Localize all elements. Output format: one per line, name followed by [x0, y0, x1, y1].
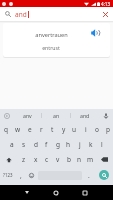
staticText: 4:13 — [101, 1, 111, 7]
staticText: entrust — [42, 44, 60, 51]
staticText: i — [85, 125, 87, 134]
button[interactable]: ?123 — [0, 167, 15, 183]
staticText: and — [80, 112, 90, 119]
button[interactable]: e — [24, 122, 36, 137]
button[interactable]: s — [18, 137, 30, 152]
button[interactable]: d — [30, 137, 41, 152]
button[interactable]: i — [80, 122, 91, 137]
button[interactable]: m — [85, 152, 96, 167]
button[interactable]: o — [91, 122, 102, 137]
button[interactable]: Back — [18, 185, 36, 200]
staticText: j — [79, 140, 81, 149]
button[interactable]: Recent apps — [76, 185, 94, 200]
button[interactable]: f — [41, 137, 52, 152]
button[interactable]: Shift — [0, 152, 18, 167]
button[interactable]: b — [63, 152, 74, 167]
button[interactable]: anvertrauen — [3, 23, 110, 57]
staticText: g — [56, 140, 60, 149]
staticText: u — [72, 125, 77, 134]
button[interactable]: l — [96, 137, 107, 152]
staticText: d — [34, 140, 38, 149]
staticText: c — [45, 155, 49, 164]
staticText: p — [106, 125, 110, 134]
button[interactable]: c — [41, 152, 52, 167]
button[interactable]: t — [47, 122, 58, 137]
staticText: t — [51, 125, 54, 134]
staticText: m — [87, 155, 94, 164]
staticText: , — [20, 171, 22, 180]
button[interactable]: v — [52, 152, 63, 167]
button[interactable]: j — [74, 137, 85, 152]
button[interactable]: Emoji — [26, 167, 37, 183]
staticText: r — [40, 125, 43, 134]
staticText: a — [10, 140, 14, 149]
button[interactable]: z — [18, 152, 30, 167]
button[interactable]: Home — [47, 185, 65, 200]
button[interactable]: u — [69, 122, 80, 137]
staticText: anvertrauen — [35, 31, 68, 39]
button[interactable]: anv — [13, 109, 41, 122]
button[interactable]: . — [83, 167, 94, 183]
staticText: s — [22, 140, 26, 149]
button[interactable]: r — [36, 122, 47, 137]
button[interactable]: w — [12, 122, 24, 137]
button[interactable]: q — [0, 122, 12, 137]
button[interactable]: Expand suggestions — [0, 109, 13, 122]
staticText: and — [15, 10, 27, 19]
staticText: e — [28, 125, 32, 134]
staticText: k — [89, 140, 93, 149]
button[interactable]: Play pronunciation — [90, 28, 100, 38]
staticText: f — [45, 140, 48, 149]
button[interactable]: Backspace — [96, 152, 113, 167]
button[interactable]: x — [30, 152, 41, 167]
staticText: anv — [23, 112, 32, 119]
button[interactable]: n — [74, 152, 85, 167]
button[interactable]: Search — [99, 170, 109, 180]
button[interactable]: a — [6, 137, 18, 152]
button[interactable]: g — [52, 137, 63, 152]
button[interactable]: Voice input — [99, 109, 113, 122]
staticText: b — [67, 155, 71, 164]
button[interactable]: an — [42, 109, 70, 122]
staticText: h — [66, 140, 71, 149]
button[interactable]: Clear query — [99, 8, 111, 20]
button[interactable]: k — [85, 137, 96, 152]
staticText: n — [77, 155, 82, 164]
button[interactable]: p — [102, 122, 113, 137]
button[interactable]: , — [15, 167, 26, 183]
button[interactable]: y — [58, 122, 69, 137]
staticText: w — [15, 125, 21, 134]
button[interactable]: and — [71, 109, 99, 122]
staticText: . — [88, 171, 90, 180]
staticText: z — [22, 155, 26, 164]
staticText: q — [4, 125, 8, 134]
staticText: v — [56, 155, 60, 164]
button[interactable]: h — [63, 137, 74, 152]
button[interactable]: Search — [2, 8, 14, 20]
staticText: ?123 — [3, 172, 13, 178]
staticText: x — [34, 155, 38, 164]
staticText: y — [62, 125, 66, 134]
staticText: an — [53, 112, 60, 119]
staticText: o — [95, 125, 99, 134]
staticText: l — [101, 140, 103, 149]
